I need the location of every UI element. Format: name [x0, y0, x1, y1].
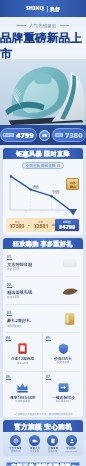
staticText: 原价: [15, 220, 21, 223]
staticText: 价值￥299: [7, 295, 20, 299]
button[interactable]: 立即下单 锁定多重优惠 >: [6, 462, 80, 466]
staticText: 精选盖毯毛毯: [7, 290, 33, 295]
staticText: 原价 7380: [33, 184, 39, 190]
button[interactable]: 到手价: [0, 128, 37, 142]
staticText: 货物无忧: [11, 450, 21, 453]
button[interactable]: 原价: [7, 220, 28, 230]
staticText: ¥7380: [10, 223, 25, 230]
staticText: 尊享180天试用: [10, 395, 36, 400]
staticText: 专业安装: [30, 450, 40, 453]
staticText: 到手价: [4, 133, 13, 137]
staticText: 享￥0利息: [17, 361, 29, 364]
staticText: *活动赠品以页面实际展示为准，最终解释权归商家所有: [14, 412, 73, 415]
staticText: ¥4799: [59, 223, 76, 230]
button[interactable]: 十五天包退: [8, 435, 23, 453]
staticText: -: [28, 222, 30, 229]
staticText: 奥舒: [50, 6, 60, 12]
button[interactable]: 04.: [3, 333, 42, 371]
staticText: 01.: [7, 254, 12, 259]
staticText: 立即下单 锁定多重优惠 >: [11, 462, 76, 466]
button[interactable]: 专业团队: [64, 435, 78, 453]
button[interactable]: 到手价: [55, 219, 79, 231]
staticText: 贴心服务到门: [56, 400, 71, 403]
staticText: 京东智能音箱: [7, 262, 33, 267]
button[interactable]: 03.: [3, 305, 83, 332]
staticText: 送货入户: [30, 447, 40, 450]
staticText: 06.: [6, 374, 11, 379]
staticText: ¥2581: [34, 223, 49, 230]
staticText: 专业团队: [66, 447, 76, 450]
other: 对比: [39, 130, 50, 141]
staticText: 不满意退换货: [15, 400, 30, 403]
button[interactable]: 07.: [43, 372, 83, 410]
staticText: SHINQ: [26, 5, 45, 12]
button[interactable]: 05.: [43, 333, 83, 371]
button[interactable]: 送货入户: [28, 435, 41, 453]
staticText: 豪礼2重好礼: [7, 318, 31, 324]
button[interactable]: 好礼 赠品: [66, 178, 79, 190]
staticText: =: [52, 222, 55, 229]
staticText: 人气热销爆款: [29, 23, 57, 28]
staticText: 白条12期免息: [11, 356, 35, 361]
staticText: 狂欢嗨购 享多重好礼: [13, 240, 73, 248]
staticText: 07.: [46, 374, 51, 379]
staticText: 品牌重磅新品上市: [0, 31, 86, 61]
staticText: 05.: [46, 335, 51, 340]
button[interactable]: 优惠: [30, 220, 52, 230]
staticText: 全民狂欢 限时直降: [26, 163, 56, 168]
staticText: 原价: [56, 133, 62, 137]
staticText: 享2+X重豪礼: [7, 324, 22, 328]
button[interactable]: 正规发票: [46, 435, 59, 453]
button[interactable]: 06.: [3, 372, 42, 410]
button[interactable]: 全民狂欢 限时直降: [22, 162, 64, 169]
staticText: one-to-one: [65, 450, 77, 453]
staticText: 03.: [7, 310, 12, 315]
button[interactable]: 01.: [3, 249, 83, 276]
staticText: 好礼 赠品: [70, 181, 76, 188]
staticText: 品质保障: [48, 450, 58, 453]
button[interactable]: 02.: [3, 277, 83, 304]
staticText: 7380: [65, 130, 83, 140]
staticText: 官方旗舰 安心购机: [14, 422, 73, 431]
staticText: 价保365天: [54, 356, 72, 361]
staticText: 一键送装同步: [52, 395, 75, 400]
staticText: 02.: [7, 282, 12, 287]
staticText: 适合父母长辈 孝亲礼遇 温馨家庭: [15, 64, 71, 69]
staticText: VS: [42, 133, 48, 138]
staticText: 价值￥399: [7, 267, 20, 271]
staticText: 买贵退差价: [57, 361, 70, 364]
staticText: 正规发票: [48, 447, 58, 450]
staticText: 4799: [16, 130, 34, 140]
staticText: 活动价 4799: [52, 189, 60, 195]
staticText: 优惠: [38, 220, 44, 223]
button[interactable]: 原价: [52, 128, 86, 142]
staticText: 04.: [6, 335, 11, 340]
staticText: 钜惠风暴 限时直降: [16, 150, 71, 158]
staticText: 十五天包退: [9, 447, 22, 450]
staticText: 到手价: [63, 220, 71, 223]
